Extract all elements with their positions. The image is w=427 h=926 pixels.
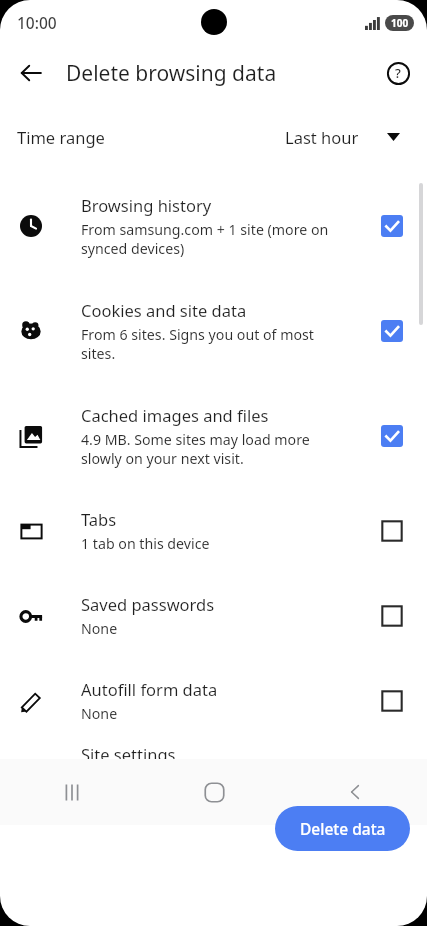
button[interactable]: Time range — [0, 100, 427, 173]
button[interactable]: Checked — [381, 215, 403, 237]
button[interactable]: Back — [285, 767, 427, 817]
staticText: Delete browsing data — [66, 59, 277, 88]
button[interactable]: Cached images and files — [0, 383, 427, 488]
staticText: 1 tab on this device — [81, 534, 210, 553]
button[interactable]: Saved passwords — [0, 573, 427, 658]
staticText: Last hour — [285, 126, 359, 148]
staticText: 10:00 — [17, 12, 57, 33]
button[interactable]: Unchecked — [381, 520, 403, 542]
staticText: From 6 sites. Signs you out of most site… — [81, 325, 314, 363]
staticText: From samsung.com + 1 site (more on synce… — [81, 220, 329, 258]
button[interactable]: Checked — [381, 425, 403, 447]
button[interactable]: Recents — [0, 767, 143, 817]
staticText: Cached images and files — [81, 404, 269, 426]
staticText: Delete data — [300, 818, 386, 839]
staticText: Autofill form data — [81, 678, 218, 700]
staticText: 100 — [391, 16, 409, 30]
button[interactable]: Cookies and site data — [0, 278, 427, 383]
button[interactable]: Unchecked — [381, 605, 403, 627]
button[interactable]: Tabs — [0, 488, 427, 573]
button[interactable]: Home — [143, 767, 285, 817]
staticText: Saved passwords — [81, 593, 215, 615]
staticText: None — [81, 704, 118, 723]
staticText: ? — [395, 64, 401, 82]
button[interactable]: Unchecked — [381, 690, 403, 712]
button[interactable]: Delete data — [275, 806, 410, 851]
button[interactable]: Help — [377, 52, 419, 94]
button[interactable]: Browsing history — [0, 173, 427, 278]
staticText: Time range — [17, 126, 105, 148]
staticText: Tabs — [81, 508, 117, 530]
staticText: None — [81, 619, 118, 638]
button[interactable]: Autofill form data — [0, 658, 427, 743]
staticText: 4.9 MB. Some sites may load more slowly … — [81, 430, 310, 468]
staticText: Site settings — [81, 743, 176, 759]
staticText: Browsing history — [81, 194, 212, 216]
button[interactable]: Back — [11, 53, 51, 93]
button[interactable]: Checked — [381, 320, 403, 342]
staticText: Cookies and site data — [81, 299, 247, 321]
button[interactable]: Site settings — [0, 743, 427, 759]
